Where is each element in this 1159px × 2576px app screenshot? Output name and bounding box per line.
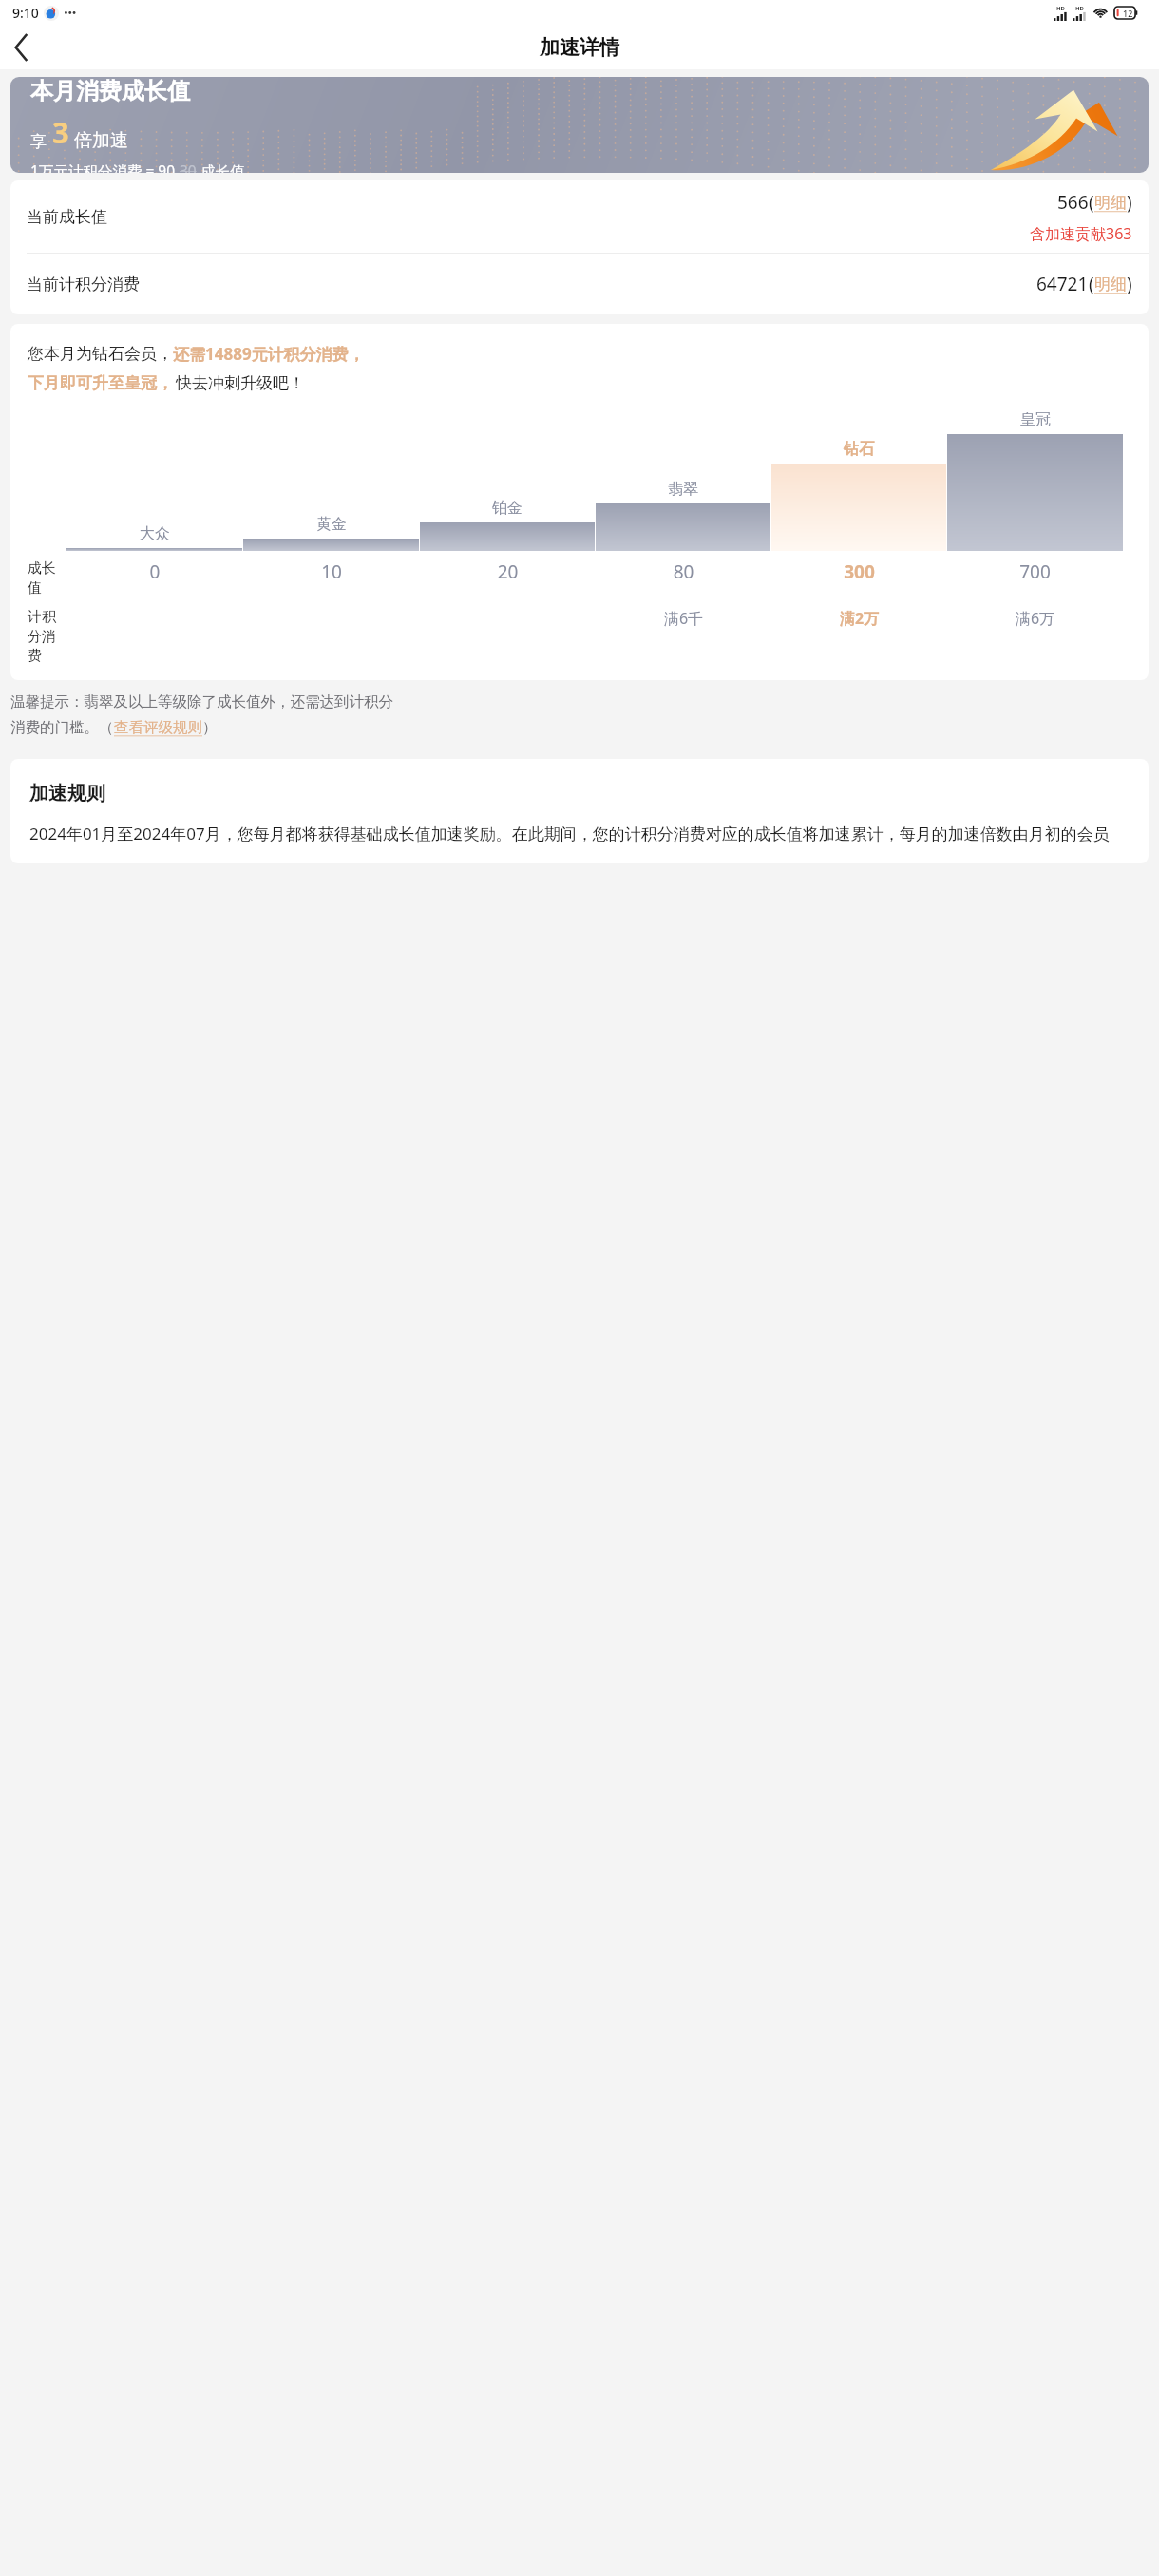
- staticText: 566: [1057, 190, 1089, 215]
- staticText: 计积分消费: [28, 608, 66, 665]
- staticText: 温馨提示：翡翠及以上等级除了成长值外，还需达到计积分: [10, 692, 393, 711]
- staticText: 12: [1123, 8, 1133, 19]
- staticText: (: [1089, 272, 1094, 296]
- button[interactable]: 本月消费成长值: [10, 77, 1149, 173]
- staticText: 下月即可升至皇冠，: [28, 373, 173, 393]
- staticText: 1万元计积分消费 = 90: [30, 161, 180, 173]
- staticText: 30: [180, 161, 197, 173]
- staticText: 20: [420, 559, 596, 584]
- staticText: 明细: [1094, 275, 1127, 294]
- staticText: 含加速贡献363: [1030, 223, 1132, 244]
- staticText: 大众: [140, 524, 170, 543]
- staticText: 64721: [1036, 272, 1089, 296]
- staticText: ）: [202, 718, 218, 737]
- button[interactable]: Back: [0, 26, 44, 69]
- staticText: 2024年01月至2024年07月，您每月都将获得基础成长值加速奖励。在此期间，…: [29, 823, 1110, 844]
- staticText: 成长值: [28, 559, 66, 597]
- staticText: (: [1089, 190, 1094, 215]
- staticText: 消费的门槛。（: [10, 718, 114, 737]
- button[interactable]: 当前成长值: [10, 180, 1149, 253]
- staticText: 0: [66, 559, 243, 584]
- staticText: 成长值: [197, 161, 245, 173]
- staticText: 80: [596, 559, 771, 584]
- staticText: 明细: [1094, 193, 1127, 213]
- staticText: 倍加速: [74, 129, 128, 152]
- staticText: 当前成长值: [27, 207, 107, 227]
- staticText: 满6千: [596, 608, 771, 629]
- staticText: 满2万: [771, 608, 947, 629]
- staticText: 皇冠: [1020, 410, 1051, 429]
- staticText: 300: [771, 559, 947, 584]
- staticText: 享: [30, 132, 47, 152]
- button[interactable]: 查看评级规则: [114, 718, 202, 737]
- staticText: 加速详情: [540, 35, 619, 60]
- staticText: 翡翠: [668, 480, 698, 499]
- staticText: HD: [1056, 5, 1065, 12]
- staticText: ): [1127, 190, 1132, 215]
- staticText: 查看评级规则: [114, 718, 202, 737]
- staticText: HD: [1075, 5, 1084, 12]
- staticText: 本月消费成长值: [30, 77, 190, 105]
- staticText: 9:10: [12, 4, 39, 22]
- staticText: 700: [947, 559, 1123, 584]
- staticText: 加速规则: [29, 782, 105, 805]
- button[interactable]: 当前计积分消费: [10, 254, 1149, 314]
- staticText: 钻石: [844, 440, 874, 459]
- staticText: 铂金: [492, 499, 522, 518]
- staticText: 满6万: [947, 608, 1123, 629]
- staticText: 您本月为钻石会员，: [28, 344, 173, 364]
- staticText: 3: [52, 112, 69, 152]
- staticText: 快去冲刺升级吧！: [176, 373, 305, 393]
- staticText: 当前计积分消费: [27, 275, 140, 294]
- staticText: 黄金: [316, 515, 347, 534]
- staticText: 还需14889元计积分消费，: [173, 343, 365, 365]
- staticText: ): [1127, 272, 1132, 296]
- staticText: 10: [243, 559, 420, 584]
